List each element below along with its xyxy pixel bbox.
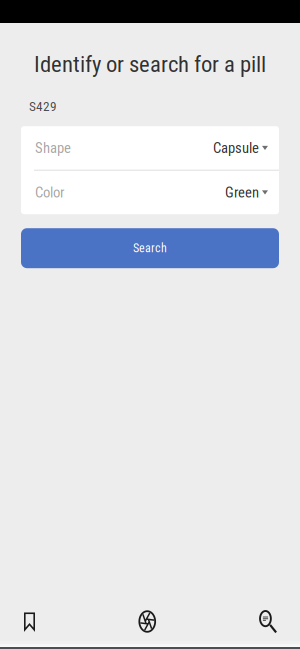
button[interactable]: Color (21, 171, 279, 214)
button[interactable]: Search (259, 610, 277, 633)
staticText: Green (225, 184, 259, 201)
staticText: Search (133, 241, 167, 255)
button[interactable]: Identify by photo (138, 610, 156, 633)
button[interactable]: Shape (21, 126, 279, 170)
button[interactable]: Search (21, 228, 279, 268)
button[interactable]: Saved (24, 612, 35, 631)
staticText: Capsule (213, 139, 259, 156)
staticText: Color (35, 184, 64, 201)
staticText: S429 (29, 99, 57, 114)
staticText: Shape (35, 139, 71, 156)
staticText: Identify or search for a pill (34, 51, 266, 78)
